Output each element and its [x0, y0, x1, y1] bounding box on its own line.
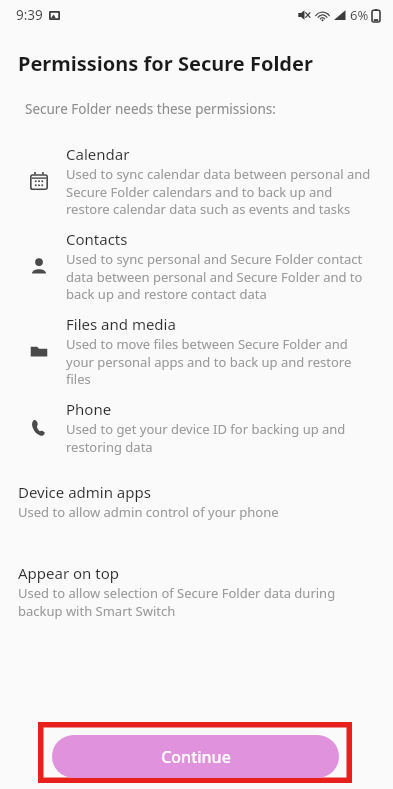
button[interactable]: Contacts: [0, 229, 393, 303]
staticText: Used to allow selection of Secure Folder…: [18, 584, 375, 620]
button[interactable]: Device admin apps: [0, 482, 393, 521]
other: Files and media: [22, 334, 56, 368]
staticText: Calendar: [66, 144, 130, 164]
other: Calendar: [22, 164, 56, 198]
other: Phone: [22, 411, 56, 445]
staticText: Used to allow admin control of your phon…: [18, 503, 279, 521]
staticText: 9:39: [16, 6, 43, 24]
staticText: Device admin apps: [18, 482, 151, 502]
other: Contacts: [22, 249, 56, 283]
staticText: Used to get your device ID for backing u…: [66, 420, 373, 456]
staticText: Secure Folder needs these permissions:: [25, 100, 276, 118]
staticText: Permissions for Secure Folder: [18, 50, 313, 77]
staticText: Used to sync calendar data between perso…: [66, 165, 373, 218]
button[interactable]: Calendar: [0, 144, 393, 218]
button[interactable]: Files and media: [0, 314, 393, 388]
staticText: Continue: [161, 746, 231, 768]
staticText: Used to sync personal and Secure Folder …: [66, 250, 373, 303]
staticText: Contacts: [66, 229, 128, 249]
button[interactable]: Appear on top: [0, 563, 393, 620]
button[interactable]: Continue: [52, 735, 339, 778]
staticText: Phone: [66, 399, 112, 419]
staticText: Used to move files between Secure Folder…: [66, 335, 373, 388]
staticText: Appear on top: [18, 563, 119, 583]
staticText: 6%: [350, 6, 369, 24]
button[interactable]: Phone: [0, 399, 393, 456]
staticText: Files and media: [66, 314, 176, 334]
